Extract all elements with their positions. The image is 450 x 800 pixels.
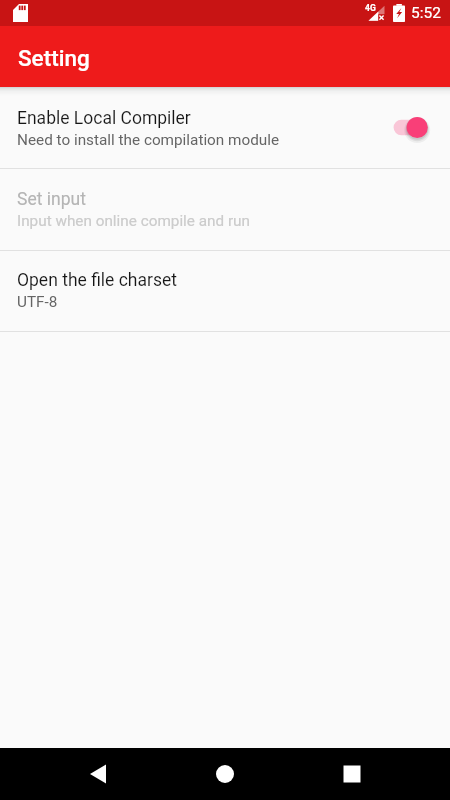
other: SD card xyxy=(13,4,28,22)
staticText: 4G xyxy=(365,3,376,13)
button[interactable]: Enable Local Compiler toggle xyxy=(383,111,433,145)
button[interactable]: Enable Local Compiler xyxy=(0,87,450,168)
staticText: Enable Local Compiler xyxy=(17,108,191,129)
staticText: Setting xyxy=(18,45,90,71)
button[interactable]: Back xyxy=(74,750,122,798)
other: 4G signal, no data connection xyxy=(365,5,385,21)
staticText: 5:52 xyxy=(411,4,441,22)
staticText: Need to install the compilation module xyxy=(17,131,280,149)
staticText: UTF-8 xyxy=(17,293,58,311)
button[interactable]: Open the file charset xyxy=(0,249,450,330)
button[interactable]: Home xyxy=(201,750,249,798)
button[interactable]: Set input xyxy=(0,168,450,249)
staticText: Open the file charset xyxy=(17,270,177,291)
staticText: Set input xyxy=(17,189,86,210)
staticText: Input when online compile and run xyxy=(17,212,251,230)
other: Battery charging xyxy=(393,4,405,22)
button[interactable]: Recent apps xyxy=(328,750,376,798)
